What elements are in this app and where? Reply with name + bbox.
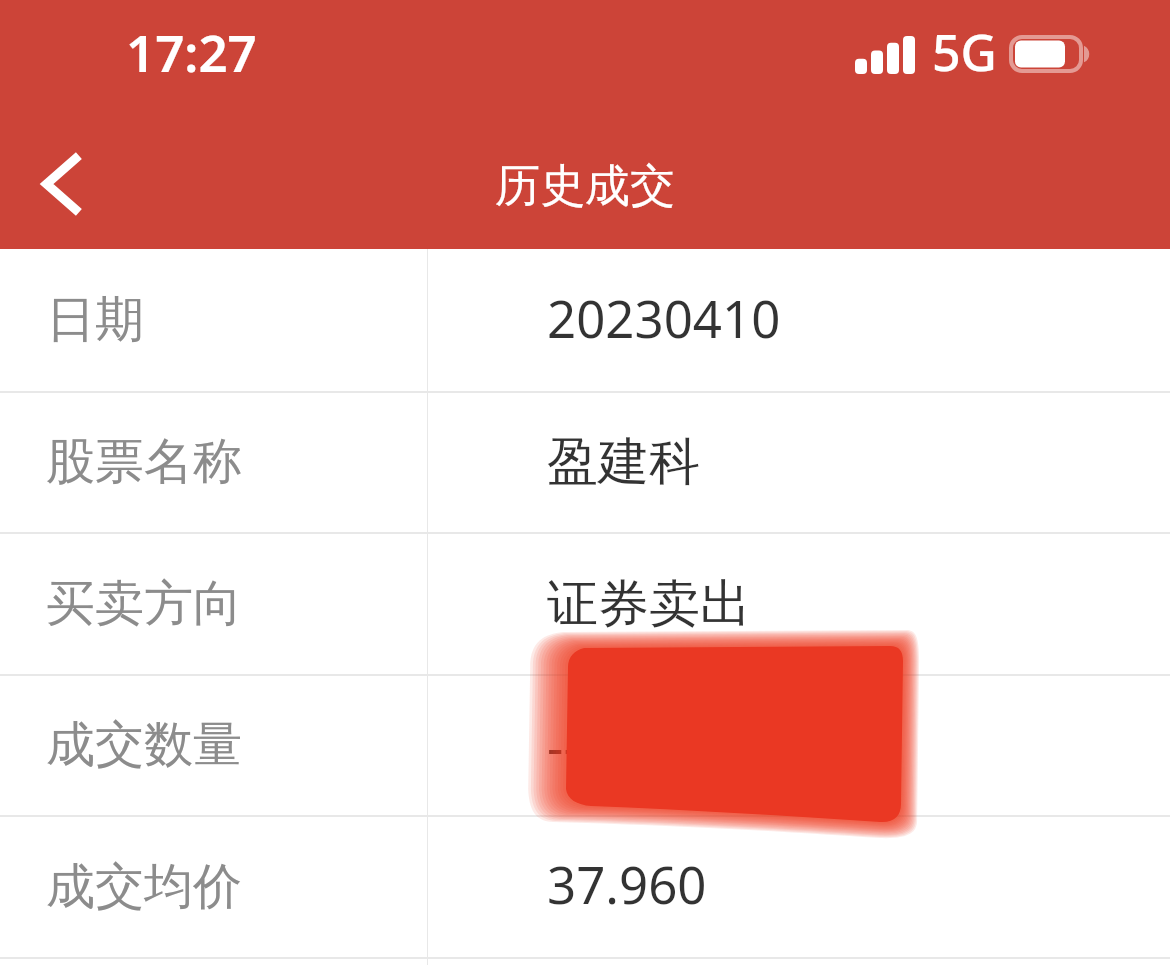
staticText: 历史成交 <box>495 158 675 215</box>
staticText: 证券卖出 <box>547 572 751 636</box>
staticText: 成交均价 <box>46 856 242 918</box>
button[interactable]: 成交数量 <box>0 675 1170 815</box>
staticText: 成交数量 <box>46 714 242 776</box>
staticText: 17:27 <box>126 17 257 86</box>
staticText: 盈建科 <box>547 430 700 494</box>
staticText: 37.960 <box>547 849 707 918</box>
staticText: 股票名称 <box>46 431 242 493</box>
button[interactable]: 成交均价 <box>0 816 1170 957</box>
staticText: 20230410 <box>547 283 781 352</box>
button[interactable]: 买卖方向 <box>0 533 1170 674</box>
staticText: 买卖方向 <box>46 573 242 635</box>
staticText: -- <box>547 711 580 780</box>
button[interactable]: Back <box>16 139 106 229</box>
staticText: 日期 <box>46 289 144 351</box>
staticText: 5G <box>932 18 997 86</box>
button[interactable]: 股票名称 <box>0 392 1170 532</box>
button[interactable]: 日期 <box>0 249 1170 391</box>
